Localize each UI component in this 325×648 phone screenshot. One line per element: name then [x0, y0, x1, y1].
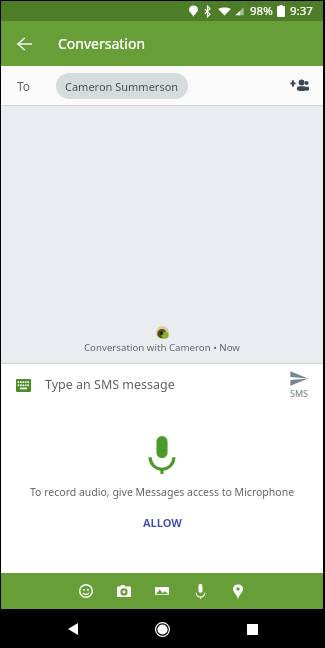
staticText: 98%	[250, 3, 273, 19]
staticText: Cameron Summerson	[65, 79, 179, 94]
button[interactable]: Recents	[235, 612, 269, 646]
button[interactable]: Cameron Summerson	[56, 73, 188, 99]
button[interactable]: Back	[1, 21, 48, 66]
staticText: To	[17, 78, 31, 94]
staticText: To record audio, give Messages access to…	[30, 485, 295, 499]
staticText: 9:37	[290, 3, 313, 19]
button[interactable]: Add people	[279, 66, 319, 105]
button[interactable]: Gallery	[143, 573, 181, 609]
button[interactable]: ALLOW	[129, 512, 196, 533]
staticText: ALLOW	[143, 515, 182, 530]
button[interactable]: Home	[145, 612, 179, 646]
staticText: Conversation	[58, 34, 146, 53]
button[interactable]: Camera	[105, 573, 143, 609]
staticText: Conversation with Cameron • Now	[84, 341, 240, 354]
button[interactable]: Send SMS	[277, 370, 321, 399]
staticText: Type an SMS message	[45, 376, 175, 393]
button[interactable]: Voice message	[181, 573, 219, 609]
button[interactable]: Keyboard	[10, 372, 36, 398]
staticText: SMS	[290, 387, 309, 399]
button[interactable]: Back	[56, 612, 90, 646]
button[interactable]: Location	[219, 573, 257, 609]
button[interactable]: Stickers	[67, 573, 105, 609]
